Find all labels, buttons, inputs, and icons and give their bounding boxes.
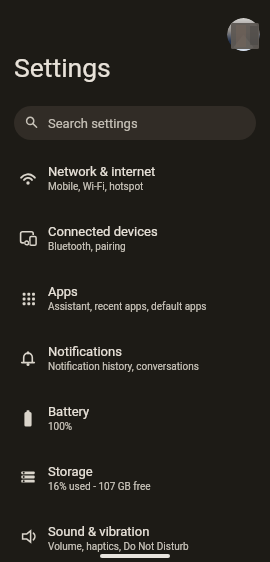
staticText: Notification history, conversations bbox=[48, 361, 199, 373]
staticText: Connected devices bbox=[48, 224, 158, 239]
staticText: Search settings bbox=[48, 116, 138, 131]
staticText: Storage bbox=[48, 464, 93, 479]
staticText: Notifications bbox=[48, 344, 122, 359]
button[interactable]: Storage bbox=[0, 448, 270, 508]
staticText: Sound & vibration bbox=[48, 524, 150, 539]
button[interactable]: Network & internet bbox=[0, 148, 270, 208]
button[interactable]: Apps bbox=[0, 268, 270, 328]
button[interactable] bbox=[227, 18, 260, 51]
staticText: Mobile, Wi-Fi, hotspot bbox=[48, 181, 144, 193]
button[interactable]: Notifications bbox=[0, 328, 270, 388]
button[interactable]: Connected devices bbox=[0, 208, 270, 268]
staticText: Apps bbox=[48, 284, 78, 299]
button[interactable]: Sound & vibration bbox=[0, 508, 270, 562]
staticText: Network & internet bbox=[48, 164, 156, 179]
staticText: 16% used - 107 GB free bbox=[48, 481, 151, 493]
staticText: Assistant, recent apps, default apps bbox=[48, 301, 207, 313]
staticText: Settings bbox=[14, 52, 111, 83]
button[interactable]: Battery bbox=[0, 388, 270, 448]
staticText: Volume, haptics, Do Not Disturb bbox=[48, 541, 189, 553]
staticText: Battery bbox=[48, 404, 90, 419]
staticText: Bluetooth, pairing bbox=[48, 241, 126, 253]
staticText: 100% bbox=[48, 421, 73, 433]
button[interactable]: Search settings bbox=[14, 106, 256, 140]
